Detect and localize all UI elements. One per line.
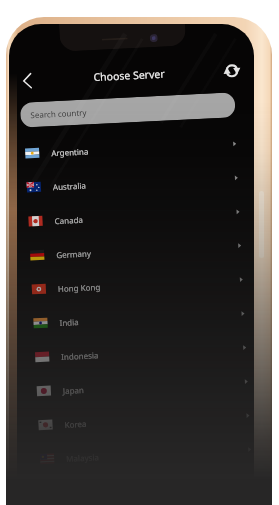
button[interactable]: Back: [11, 65, 42, 96]
staticText: Germany: [56, 247, 91, 260]
staticText: Japan: [63, 384, 85, 396]
staticText: Hong Kong: [58, 281, 101, 294]
button[interactable]: Hong Kong: [21, 261, 254, 307]
staticText: Choose Server: [41, 64, 217, 87]
staticText: Malaysia: [66, 451, 99, 464]
button[interactable]: Indonesia: [24, 329, 254, 375]
button[interactable]: Argentina: [14, 125, 254, 171]
staticText: Korea: [64, 418, 87, 430]
staticText: Canada: [54, 214, 84, 226]
button[interactable]: Japan: [26, 363, 254, 409]
button[interactable]: Korea: [28, 397, 254, 443]
button[interactable]: Refresh: [216, 55, 247, 86]
button[interactable]: Canada: [18, 193, 254, 239]
staticText: Indonesia: [61, 349, 99, 362]
button[interactable]: India: [23, 295, 254, 341]
button[interactable]: Germany: [19, 227, 254, 273]
staticText: Search country: [30, 106, 88, 120]
button[interactable]: Australia: [16, 159, 254, 205]
staticText: Australia: [53, 180, 87, 192]
button[interactable]: Search country: [20, 92, 236, 128]
staticText: Argentina: [51, 145, 89, 158]
staticText: India: [59, 316, 80, 328]
